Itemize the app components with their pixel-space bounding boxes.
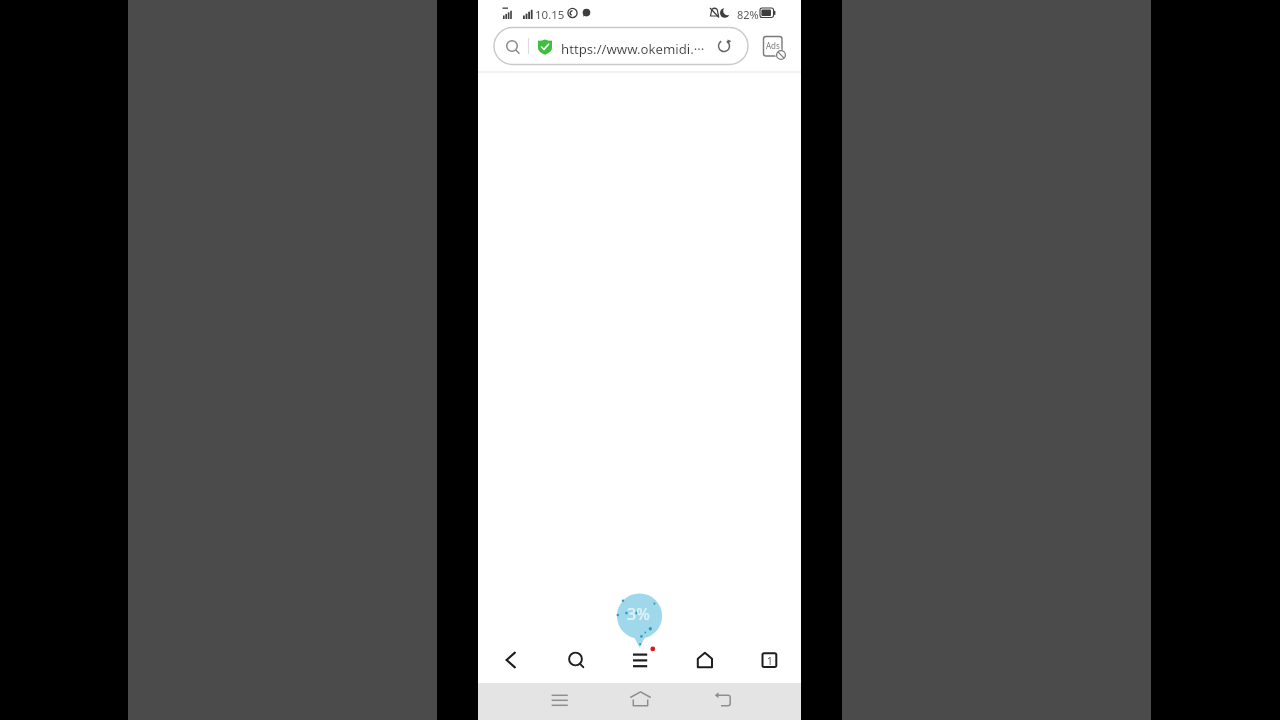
staticText: https://www.okemidi.··· — [561, 40, 705, 58]
button[interactable] — [625, 644, 655, 676]
button[interactable] — [492, 644, 522, 676]
button[interactable] — [708, 687, 740, 717]
button[interactable] — [754, 644, 784, 676]
button[interactable] — [690, 644, 720, 676]
staticText: 10.15 — [535, 7, 565, 23]
button[interactable] — [561, 644, 591, 676]
button[interactable] — [624, 687, 656, 717]
button[interactable] — [544, 687, 576, 717]
staticText: 3% — [627, 603, 650, 625]
button[interactable] — [494, 27, 748, 64]
button[interactable] — [758, 34, 788, 60]
staticText: Ads — [766, 40, 780, 51]
staticText: 82% — [737, 7, 759, 22]
staticText: 1 — [767, 654, 773, 668]
